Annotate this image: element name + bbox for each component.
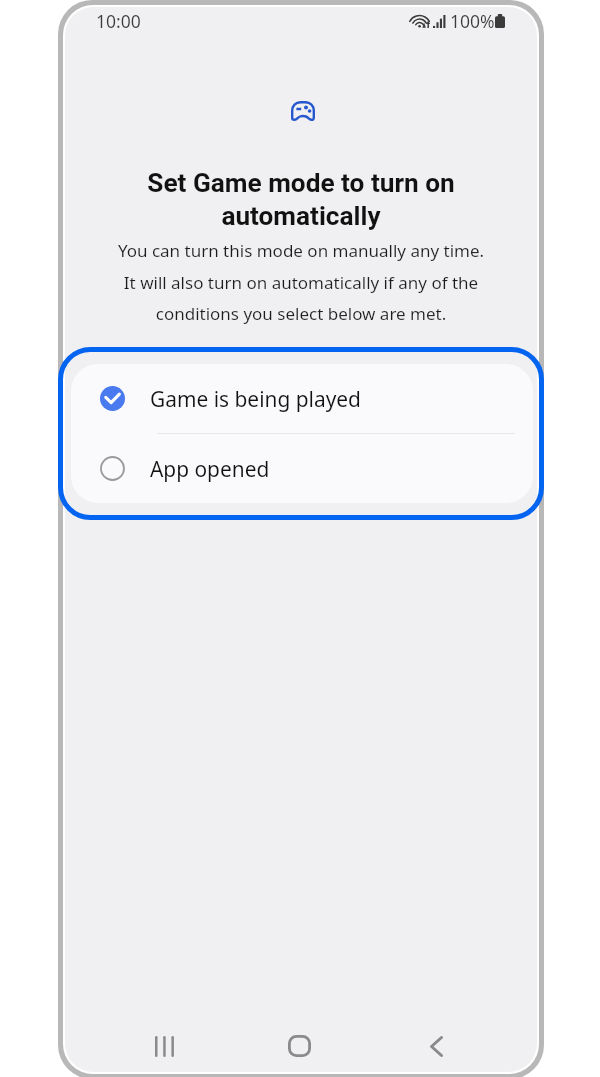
staticText: 100%: [450, 9, 495, 33]
staticText: App opened: [150, 455, 270, 483]
staticText: 10:00: [96, 9, 141, 33]
staticText: You can turn this mode on manually any t…: [65, 239, 537, 325]
button[interactable]: Back: [411, 1021, 461, 1071]
button[interactable]: Recent apps: [139, 1021, 189, 1071]
staticText: Set Game mode to turn on automatically: [65, 168, 537, 232]
button[interactable]: Home: [274, 1021, 324, 1071]
button[interactable]: App opened: [71, 434, 533, 503]
staticText: Game is being played: [150, 385, 361, 413]
button[interactable]: Game is being played: [71, 364, 533, 433]
